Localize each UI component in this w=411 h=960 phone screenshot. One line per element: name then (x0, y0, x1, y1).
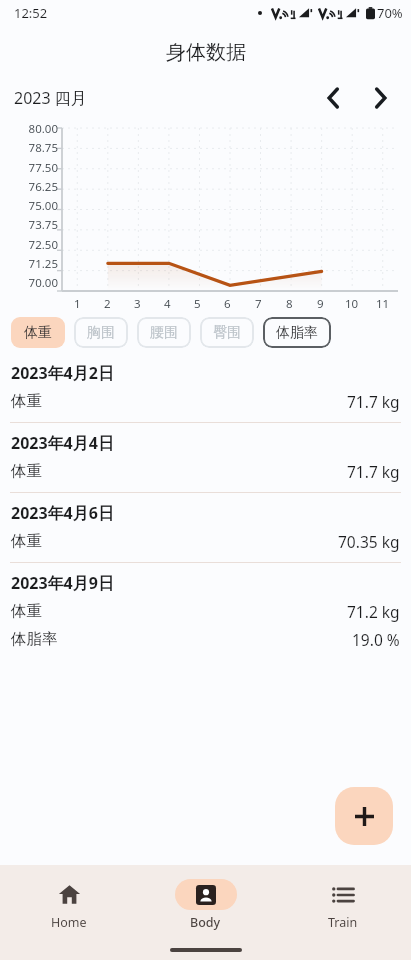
button[interactable]: 腰围 (137, 317, 191, 348)
button[interactable]: Home (0, 875, 137, 935)
button[interactable]: Body (137, 875, 274, 935)
staticText: 9 (317, 296, 324, 312)
staticText: 10 (345, 296, 359, 312)
staticText: 70.35 kg (338, 531, 400, 552)
staticText: Train (328, 914, 358, 931)
staticText: 臀围 (213, 324, 241, 342)
staticText: 71.2 kg (347, 601, 400, 622)
button[interactable]: 胸围 (74, 317, 128, 348)
button[interactable]: 2023年4月6日 (0, 493, 411, 563)
staticText: 5 (194, 296, 201, 312)
staticText: 8 (286, 296, 293, 312)
staticText: 78.75 (28, 140, 58, 156)
button[interactable]: Train (274, 875, 411, 935)
button[interactable]: 体脂率 (263, 317, 331, 348)
staticText: 2 (104, 296, 111, 312)
staticText: 1 (74, 296, 81, 312)
staticText: Body (190, 914, 221, 931)
staticText: 胸围 (87, 324, 115, 342)
staticText: 80.00 (28, 121, 58, 137)
button[interactable]: 2023年4月2日 (0, 353, 411, 423)
staticText: 75.00 (28, 198, 58, 214)
staticText: 体重 (11, 391, 42, 411)
staticText: 2023年4月9日 (11, 572, 114, 594)
staticText: 12:52 (14, 4, 48, 22)
button[interactable]: 2023年4月9日 (0, 563, 411, 660)
staticText: 体脂率 (276, 324, 318, 342)
staticText: 70.00 (28, 275, 58, 291)
staticText: 4 (164, 296, 171, 312)
staticText: Home (51, 914, 87, 931)
staticText: 体重 (24, 324, 52, 342)
button[interactable]: Previous month (316, 81, 350, 115)
staticText: 身体数据 (166, 40, 246, 65)
staticText: 70% (377, 4, 403, 22)
staticText: 77.50 (28, 160, 58, 176)
staticText: 72.50 (28, 237, 58, 253)
staticText: 腰围 (150, 324, 178, 342)
staticText: 体脂率 (11, 629, 58, 649)
staticText: 71.7 kg (347, 461, 400, 482)
staticText: 19.0 % (352, 629, 400, 650)
staticText: 2023年4月4日 (11, 432, 114, 454)
staticText: 11 (376, 296, 390, 312)
staticText: 体重 (11, 461, 42, 481)
staticText: 2023 四月 (14, 87, 87, 109)
button[interactable]: 体重 (11, 317, 65, 348)
staticText: 体重 (11, 601, 42, 621)
staticText: 71.25 (28, 256, 58, 272)
staticText: 73.75 (28, 217, 58, 233)
button[interactable]: 臀围 (200, 317, 254, 348)
staticText: 3 (134, 296, 141, 312)
button[interactable]: 2023年4月4日 (0, 423, 411, 493)
staticText: 2023年4月6日 (11, 502, 114, 524)
staticText: 6 (224, 296, 231, 312)
staticText: 2023年4月2日 (11, 362, 114, 384)
button[interactable]: Add record (335, 787, 393, 845)
button[interactable]: Next month (363, 81, 397, 115)
staticText: 体重 (11, 531, 42, 551)
staticText: 71.7 kg (347, 391, 400, 412)
staticText: 76.25 (28, 179, 58, 195)
staticText: 7 (255, 296, 262, 312)
